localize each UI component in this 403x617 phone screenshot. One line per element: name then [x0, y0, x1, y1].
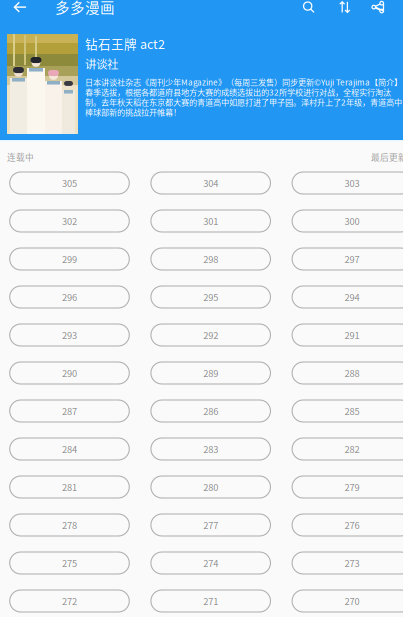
- button[interactable]: Search: [288, 0, 329, 20]
- staticText: 280: [203, 480, 218, 494]
- button[interactable]: 284: [10, 438, 129, 460]
- staticText: 295: [203, 290, 218, 304]
- button[interactable]: 297: [292, 248, 403, 270]
- button[interactable]: 299: [10, 248, 129, 270]
- button[interactable]: 多多漫画: [55, 0, 115, 20]
- staticText: 289: [203, 366, 218, 380]
- button[interactable]: 305: [10, 172, 129, 194]
- staticText: 275: [62, 556, 77, 570]
- staticText: 281: [62, 480, 77, 494]
- staticText: 300: [344, 214, 359, 228]
- button[interactable]: 287: [10, 400, 129, 422]
- button[interactable]: 277: [151, 514, 270, 536]
- button[interactable]: 272: [10, 590, 129, 612]
- button[interactable]: 303: [292, 172, 403, 194]
- staticText: 276: [344, 518, 359, 532]
- staticText: 282: [344, 442, 359, 456]
- button[interactable]: 302: [10, 210, 129, 232]
- staticText: 304: [203, 176, 218, 190]
- button[interactable]: 286: [151, 400, 270, 422]
- staticText: 291: [344, 328, 359, 342]
- staticText: 302: [62, 214, 77, 228]
- button[interactable]: 271: [151, 590, 270, 612]
- staticText: 278: [62, 518, 77, 532]
- button[interactable]: 281: [10, 476, 129, 498]
- staticText: 273: [344, 556, 359, 570]
- button[interactable]: 278: [10, 514, 129, 536]
- button[interactable]: 273: [292, 552, 403, 574]
- staticText: 讲谈社: [85, 55, 118, 72]
- staticText: 283: [203, 442, 218, 456]
- button[interactable]: 282: [292, 438, 403, 460]
- staticText: 钻石王牌 act2: [85, 34, 165, 52]
- button[interactable]: 294: [292, 286, 403, 308]
- staticText: 272: [62, 594, 77, 608]
- staticText: 290: [62, 366, 77, 380]
- button[interactable]: 298: [151, 248, 270, 270]
- staticText: 301: [203, 214, 218, 228]
- staticText: 日本讲谈社杂志《周刊少年Magazine》（每周三发售）同步更新©Yuji Te…: [85, 77, 402, 117]
- button[interactable]: 276: [292, 514, 403, 536]
- staticText: 最后更新: [371, 151, 403, 163]
- button[interactable]: 296: [10, 286, 129, 308]
- button[interactable]: 301: [151, 210, 270, 232]
- button[interactable]: 285: [292, 400, 403, 422]
- button[interactable]: 270: [292, 590, 403, 612]
- staticText: 270: [344, 594, 359, 608]
- staticText: 277: [203, 518, 218, 532]
- button[interactable]: 292: [151, 324, 270, 346]
- staticText: 287: [62, 404, 77, 418]
- button[interactable]: 289: [151, 362, 270, 384]
- button[interactable]: 300: [292, 210, 403, 232]
- staticText: 303: [344, 176, 359, 190]
- button[interactable]: 279: [292, 476, 403, 498]
- staticText: 294: [344, 290, 359, 304]
- staticText: 288: [344, 366, 359, 380]
- staticText: 286: [203, 404, 218, 418]
- staticText: 296: [62, 290, 77, 304]
- staticText: 293: [62, 328, 77, 342]
- staticText: 279: [344, 480, 359, 494]
- button[interactable]: 304: [151, 172, 270, 194]
- staticText: 284: [62, 442, 77, 456]
- staticText: 299: [62, 252, 77, 266]
- staticText: 298: [203, 252, 218, 266]
- button[interactable]: Sort: [329, 0, 361, 20]
- button[interactable]: 290: [10, 362, 129, 384]
- button[interactable]: 280: [151, 476, 270, 498]
- staticText: 305: [62, 176, 77, 190]
- button[interactable]: 293: [10, 324, 129, 346]
- button[interactable]: 275: [10, 552, 129, 574]
- staticText: 292: [203, 328, 218, 342]
- staticText: 多多漫画: [55, 0, 115, 17]
- button[interactable]: 295: [151, 286, 270, 308]
- button[interactable]: 283: [151, 438, 270, 460]
- staticText: 271: [203, 594, 218, 608]
- button[interactable]: Share: [361, 0, 394, 20]
- button[interactable]: 288: [292, 362, 403, 384]
- button[interactable]: 274: [151, 552, 270, 574]
- staticText: 285: [344, 404, 359, 418]
- staticText: 连载中: [7, 151, 34, 163]
- staticText: 274: [203, 556, 218, 570]
- button[interactable]: Back: [0, 0, 40, 20]
- button[interactable]: 291: [292, 324, 403, 346]
- staticText: 297: [344, 252, 359, 266]
